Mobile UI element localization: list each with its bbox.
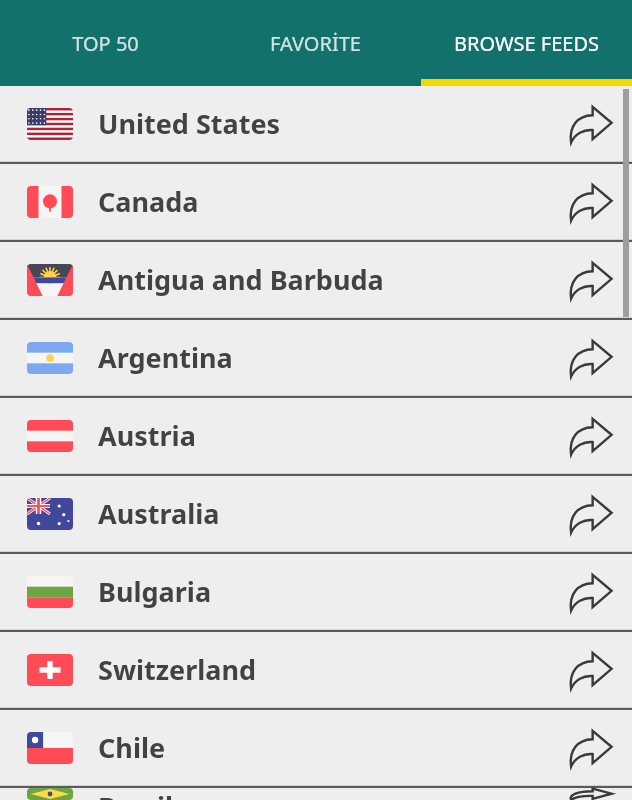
button[interactable]: Share — [558, 476, 622, 551]
button[interactable]: Antigua and Barbuda — [0, 242, 632, 317]
button[interactable]: Share — [558, 788, 622, 800]
button[interactable]: United States — [0, 86, 632, 161]
button[interactable]: FAVORİTE — [210, 0, 421, 86]
button[interactable]: Share — [558, 398, 622, 473]
button[interactable]: TOP 50 — [0, 0, 210, 86]
staticText: United States — [98, 105, 558, 142]
button[interactable]: Switzerland — [0, 632, 632, 707]
staticText: Australia — [98, 495, 558, 532]
staticText: Chile — [98, 729, 558, 766]
staticText: FAVORİTE — [270, 30, 361, 57]
button[interactable]: Share — [558, 554, 622, 629]
button[interactable]: Share — [558, 164, 622, 239]
staticText: Canada — [98, 183, 558, 220]
staticText: Antigua and Barbuda — [98, 261, 558, 298]
button[interactable]: Australia — [0, 476, 632, 551]
staticText: Switzerland — [98, 651, 558, 688]
button[interactable]: Austria — [0, 398, 632, 473]
staticText: Bulgaria — [98, 573, 558, 610]
button[interactable]: Share — [558, 632, 622, 707]
button[interactable]: Canada — [0, 164, 632, 239]
staticText: TOP 50 — [72, 30, 139, 57]
staticText: Brazil — [98, 788, 558, 800]
button[interactable]: Brazil — [0, 788, 632, 800]
staticText: BROWSE FEEDS — [454, 30, 599, 57]
button[interactable]: Bulgaria — [0, 554, 632, 629]
button[interactable]: Share — [558, 242, 622, 317]
button[interactable]: Chile — [0, 710, 632, 785]
staticText: Austria — [98, 417, 558, 454]
button[interactable]: Share — [558, 320, 622, 395]
button[interactable]: Share — [558, 86, 622, 161]
button[interactable]: BROWSE FEEDS — [421, 0, 632, 86]
button[interactable]: Argentina — [0, 320, 632, 395]
button[interactable]: Share — [558, 710, 622, 785]
staticText: Argentina — [98, 339, 558, 376]
